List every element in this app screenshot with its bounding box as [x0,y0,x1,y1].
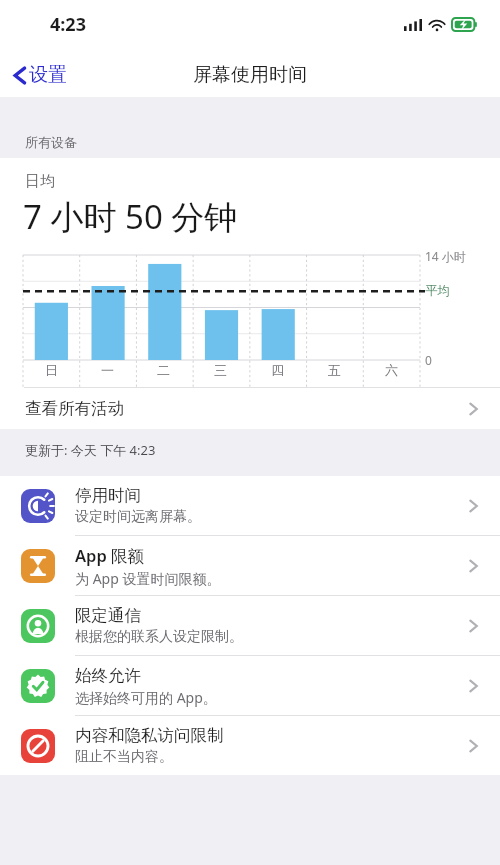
other: App 限额 [21,549,55,583]
staticText: 7 小时 50 分钟 [23,194,238,239]
staticText: 为 App 设置时间限额。 [75,569,221,588]
staticText: 设置 [29,63,67,87]
staticText: 一 [101,362,114,378]
staticText: 四 [271,362,284,378]
other: 内容和隐私访问限制 [21,729,55,763]
staticText: 二 [157,362,170,378]
button[interactable]: 限定通信 [0,596,500,655]
staticText: 阻止不当内容。 [75,748,173,766]
staticText: 限定通信 [75,605,141,626]
staticText: 停用时间 [75,485,141,506]
staticText: 日均 [25,172,55,191]
staticText: 所有设备 [25,134,77,150]
staticText: 4:23 [50,12,86,37]
staticText: 平均 [425,283,450,299]
staticText: 根据您的联系人设定限制。 [75,628,243,646]
staticText: 查看所有活动 [25,398,124,419]
button[interactable]: 内容和隐私访问限制 [0,716,500,775]
button[interactable]: 设置 [0,57,79,93]
button[interactable]: 始终允许 [0,656,500,715]
staticText: 始终允许 [75,665,141,686]
staticText: 五 [328,362,341,378]
other: 停用时间 [21,489,55,523]
staticText: 内容和隐私访问限制 [75,725,224,746]
staticText: 日 [45,362,58,378]
staticText: 14 小时 [425,248,466,264]
staticText: 三 [214,362,227,378]
staticText: 选择始终可用的 App。 [75,688,217,707]
button[interactable]: 查看所有活动 [0,388,500,429]
staticText: 设定时间远离屏幕。 [75,508,201,526]
other: 始终允许 [21,669,55,703]
staticText: App 限额 [75,544,145,567]
button[interactable]: 停用时间 [0,476,500,535]
button[interactable]: App 限额 [0,536,500,595]
other: 限定通信 [21,609,55,643]
staticText: 0 [425,352,432,368]
staticText: 更新于: 今天 下午 4:23 [25,441,156,459]
staticText: 六 [385,362,398,378]
staticText: 屏幕使用时间 [193,63,307,87]
